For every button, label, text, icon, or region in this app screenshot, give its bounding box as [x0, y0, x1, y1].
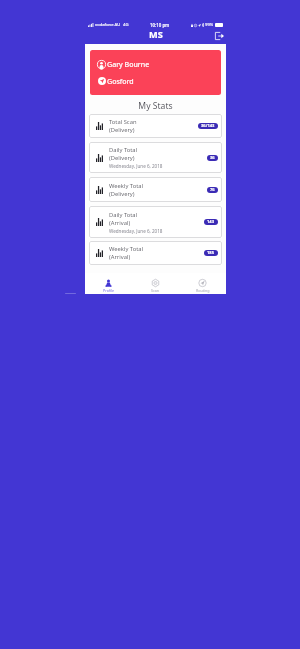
button[interactable]: Gary Bourne: [90, 50, 221, 95]
staticText: 76: [210, 187, 215, 193]
staticText: Routing: [196, 288, 210, 293]
staticText: (Arrival): [109, 219, 131, 227]
staticText: 99%: [205, 22, 214, 28]
staticText: 36/143: [201, 123, 215, 129]
staticText: Scan: [151, 288, 160, 293]
staticText: Wednesday, June 6, 2018: [109, 228, 163, 234]
staticText: vodafone AU: [95, 22, 121, 28]
staticText: Daily Total: [109, 211, 138, 219]
button[interactable]: Routing: [179, 273, 226, 294]
button[interactable]: Total Scan: [89, 114, 222, 138]
staticText: 10:10 pm: [150, 22, 170, 28]
staticText: Gosford: [107, 76, 134, 86]
staticText: Daily Total: [109, 146, 138, 154]
staticText: Weekly Total: [109, 182, 144, 190]
staticText: (Delivery): [109, 154, 135, 162]
staticText: (Delivery): [109, 126, 135, 134]
staticText: (Delivery): [109, 190, 135, 198]
button[interactable]: Weekly Total: [89, 177, 222, 202]
staticText: MS: [149, 28, 163, 41]
staticText: 143: [207, 219, 215, 225]
button[interactable]: Weekly Total: [89, 241, 222, 265]
staticText: Profile: [103, 288, 115, 293]
staticText: (Arrival): [109, 253, 131, 261]
staticText: Gary Bourne: [107, 59, 150, 69]
staticText: Wednesday, June 6, 2018: [109, 163, 163, 169]
button[interactable]: Daily Total: [89, 206, 222, 238]
button[interactable]: Log out: [213, 29, 226, 42]
staticText: My Stats: [85, 100, 226, 112]
staticText: 185: [207, 250, 215, 256]
button[interactable]: Profile: [85, 273, 132, 294]
button[interactable]: Scan: [132, 273, 179, 294]
staticText: 36: [210, 155, 215, 161]
staticText: 4G: [123, 22, 129, 28]
staticText: Weekly Total: [109, 245, 144, 253]
staticText: Total Scan: [109, 118, 137, 126]
button[interactable]: Daily Total: [89, 142, 222, 173]
